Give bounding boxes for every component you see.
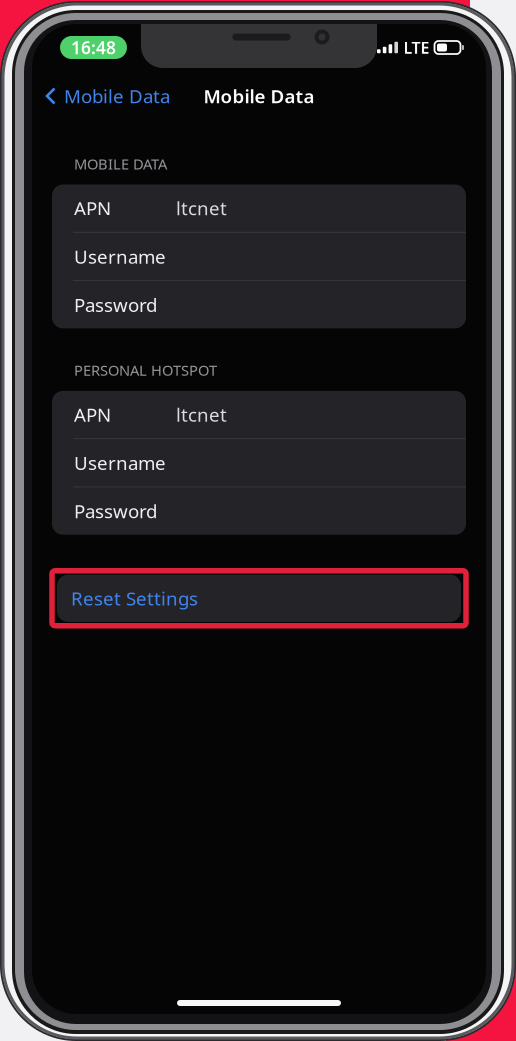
staticText: Mobile Data [203,84,314,108]
staticText: Mobile Data [64,84,170,108]
staticText: LTE [403,37,429,58]
staticText: Username [74,450,166,475]
staticText: MOBILE DATA [74,154,167,173]
button[interactable]: Password [52,281,466,328]
staticText: ltcnet [176,196,227,220]
staticText: Reset Settings [71,586,198,611]
staticText: Password [74,499,157,523]
button[interactable]: Reset Settings [32,575,486,622]
staticText: PERSONAL HOTSPOT [74,360,217,380]
staticText: Password [74,292,157,317]
button[interactable]: Password [52,487,466,535]
staticText: ltcnet [176,402,227,427]
staticText: APN [74,402,111,427]
button[interactable]: Username [52,439,466,486]
button[interactable]: APN [52,184,466,232]
staticText: Username [74,244,166,269]
button[interactable]: Mobile Data [32,76,170,116]
staticText: APN [74,196,111,220]
button[interactable]: Username [52,233,466,280]
button[interactable]: APN [52,391,466,438]
staticText: 16:48 [71,36,116,59]
